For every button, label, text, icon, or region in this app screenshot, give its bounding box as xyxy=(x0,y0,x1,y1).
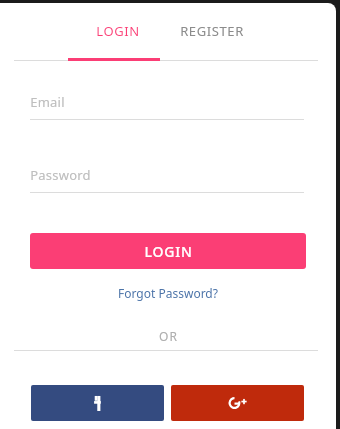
staticText: LOGIN xyxy=(144,242,193,261)
staticText: REGISTER xyxy=(180,22,244,40)
button[interactable]: Sign in with Facebook xyxy=(31,385,164,421)
staticText: OR xyxy=(159,328,178,344)
staticText: Email xyxy=(30,93,65,111)
button[interactable]: LOGIN xyxy=(30,233,306,269)
button[interactable]: REGISTER xyxy=(162,17,262,45)
button[interactable]: Password xyxy=(30,165,304,193)
staticText: LOGIN xyxy=(96,22,140,40)
button[interactable]: Forgot Password? xyxy=(118,285,218,301)
button[interactable]: Sign in with Google Plus xyxy=(171,385,304,421)
staticText: Forgot Password? xyxy=(118,285,218,301)
button[interactable]: LOGIN xyxy=(74,17,162,45)
button[interactable]: Email xyxy=(30,92,304,120)
staticText: Password xyxy=(30,166,91,184)
